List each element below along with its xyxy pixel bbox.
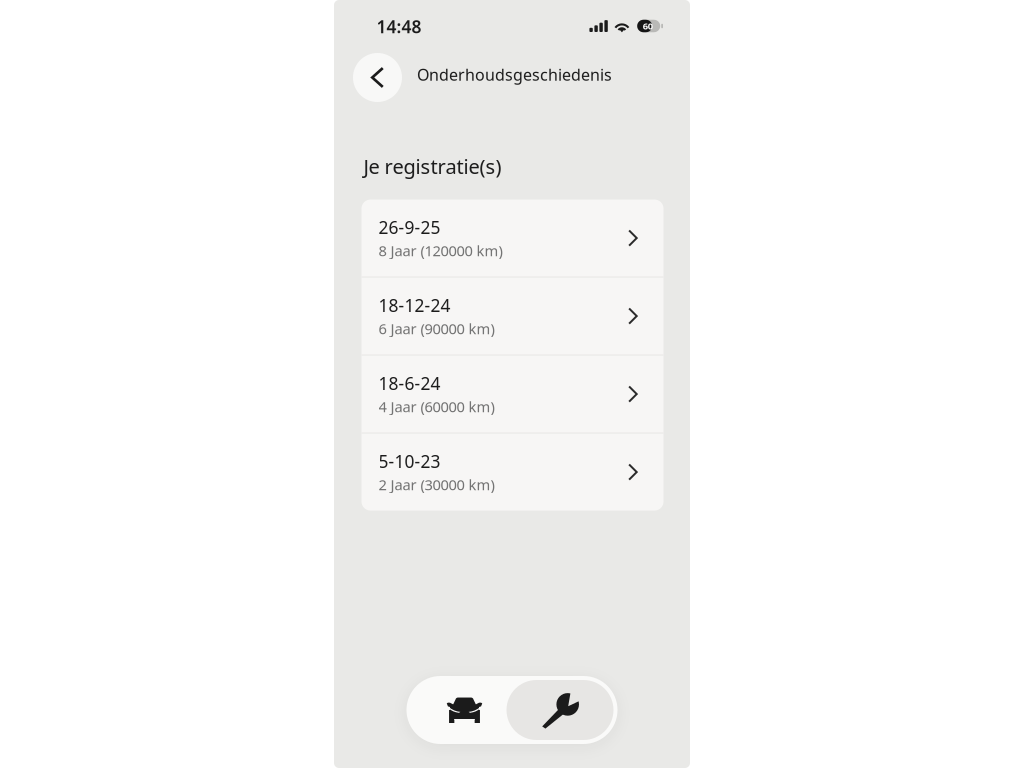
- staticText: 18-12-24: [378, 294, 450, 317]
- button[interactable]: 18-6-24: [361, 356, 663, 433]
- staticText: 2 Jaar (30000 km): [378, 475, 494, 494]
- staticText: 8 Jaar (120000 km): [378, 241, 502, 260]
- staticText: 18-6-24: [378, 372, 440, 395]
- button[interactable]: Voertuig: [410, 680, 506, 740]
- staticText: 26-9-25: [378, 216, 440, 239]
- button[interactable]: 5-10-23: [361, 434, 663, 511]
- staticText: 14:48: [376, 15, 421, 38]
- staticText: 4 Jaar (60000 km): [378, 397, 494, 416]
- button[interactable]: Onderhoud: [506, 680, 613, 740]
- staticText: 60: [643, 20, 653, 32]
- staticText: 5-10-23: [378, 450, 440, 473]
- staticText: Onderhoudsgeschiedenis: [417, 64, 612, 85]
- staticText: Je registratie(s): [363, 153, 501, 180]
- staticText: 6 Jaar (90000 km): [378, 319, 494, 338]
- button[interactable]: Terug: [353, 53, 402, 102]
- button[interactable]: 26-9-25: [361, 200, 663, 277]
- button[interactable]: 18-12-24: [361, 278, 663, 355]
